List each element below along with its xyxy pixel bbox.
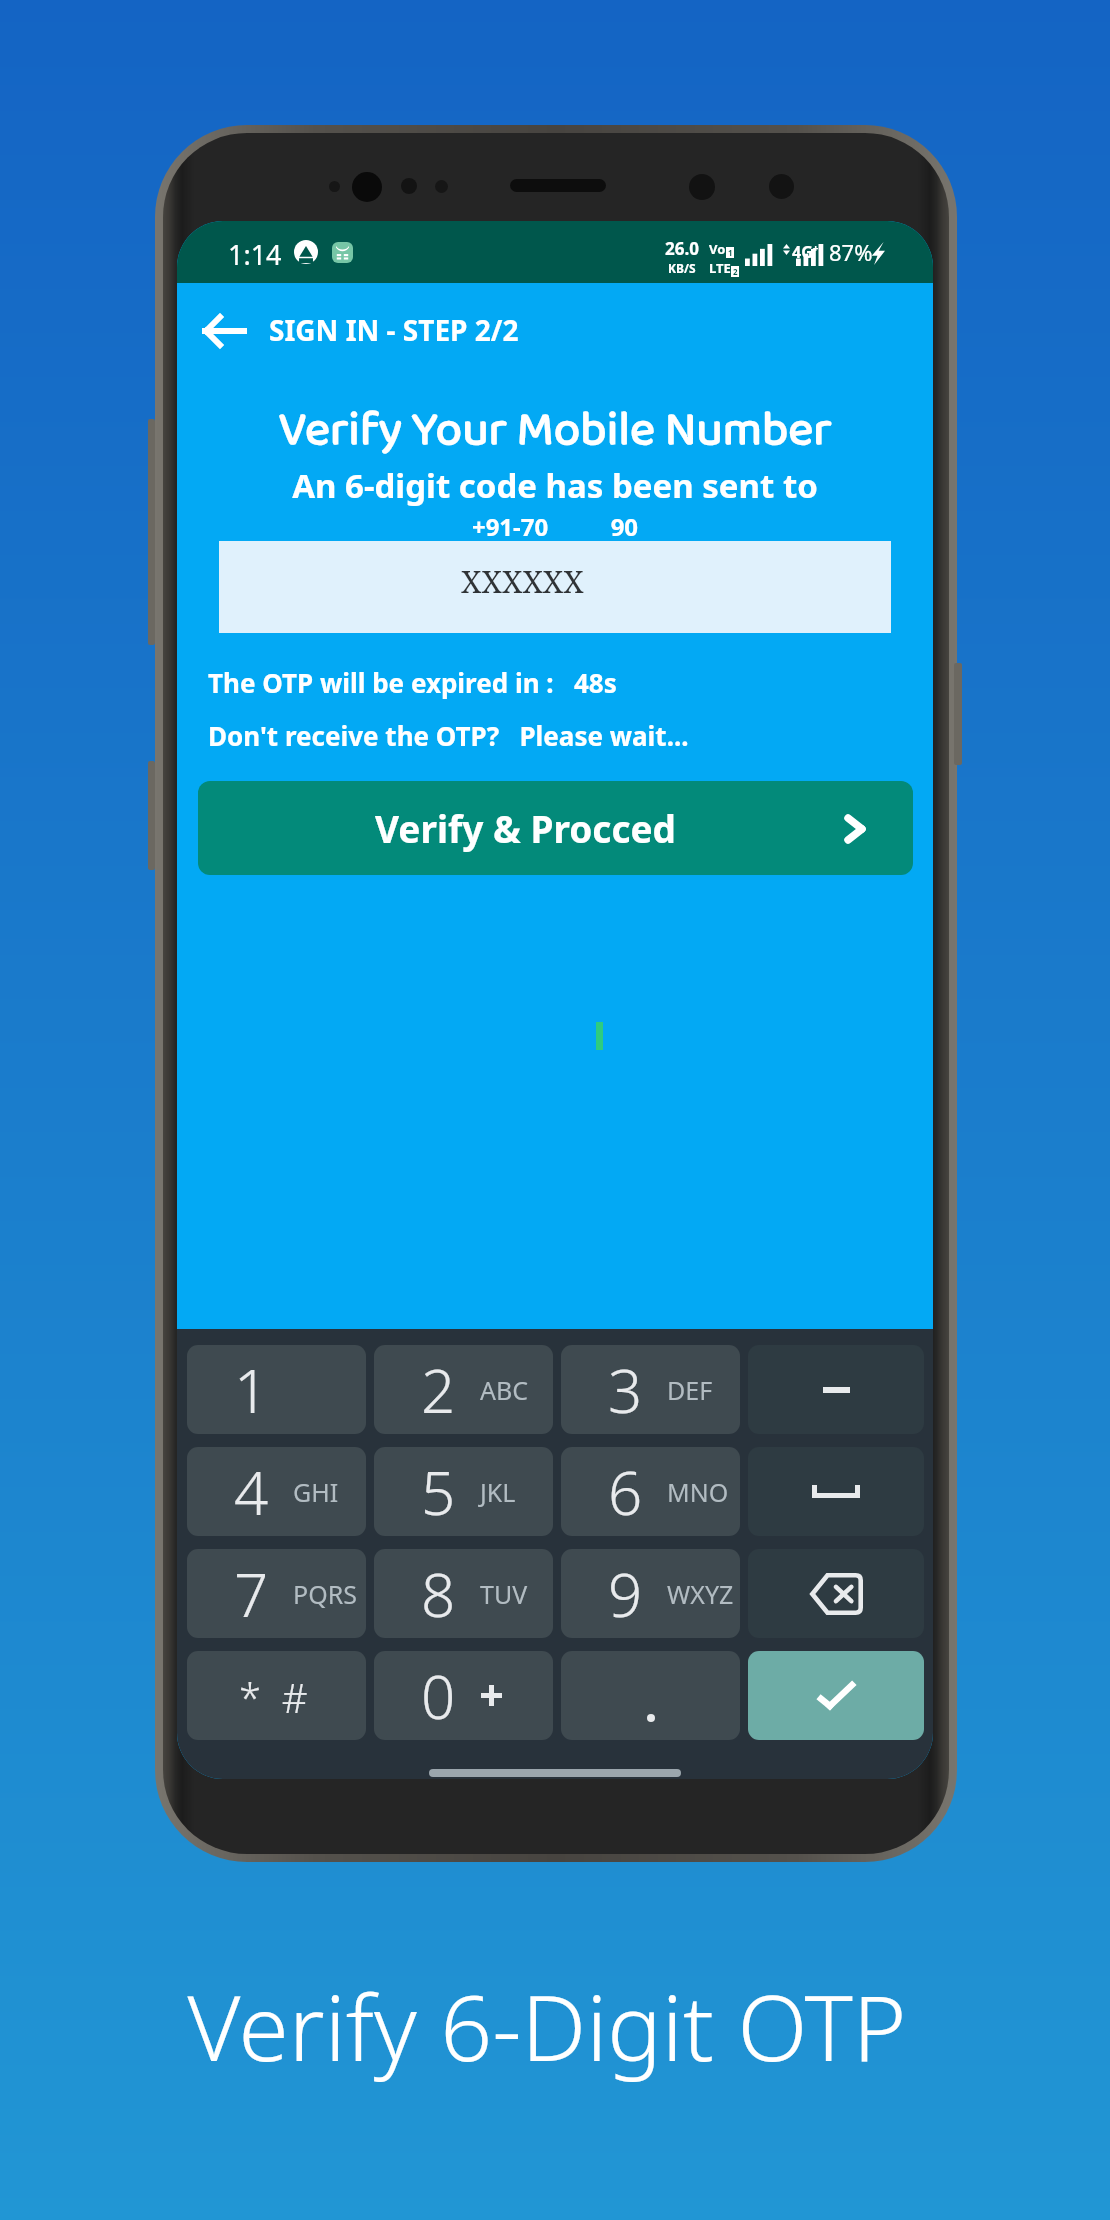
button[interactable]: 4 — [187, 1447, 366, 1536]
staticText: Verify 6-Digit OTP — [0, 1964, 1102, 2088]
button[interactable]: 9 — [561, 1549, 740, 1638]
staticText: Verify & Procced — [375, 803, 676, 853]
button[interactable]: Verify & Procced — [198, 781, 913, 875]
button[interactable]: 5 — [374, 1447, 553, 1536]
staticText: 0 — [421, 1655, 456, 1737]
button[interactable]: Done — [748, 1651, 924, 1740]
staticText: +91-70 90 — [177, 510, 933, 543]
staticText: JKL — [480, 1475, 516, 1509]
staticText: LTE — [709, 259, 731, 277]
staticText: * # — [239, 1670, 308, 1724]
staticText: PQRS — [293, 1577, 357, 1611]
staticText: 8 — [421, 1553, 456, 1635]
staticText: 26.0 — [665, 237, 699, 260]
staticText: 6 — [608, 1451, 643, 1533]
staticText: SIGN IN - STEP 2/2 — [269, 311, 519, 349]
staticText: KB/S — [668, 260, 696, 276]
button[interactable]: 8 — [374, 1549, 553, 1638]
staticText: 2 — [421, 1349, 456, 1431]
staticText: 4G⁺ — [792, 241, 819, 263]
staticText: 4 — [234, 1451, 269, 1533]
button[interactable]: 2 — [374, 1345, 553, 1434]
staticText: 87% — [829, 237, 873, 267]
button[interactable]: 6 — [561, 1447, 740, 1536]
staticText: Don't receive the OTP? Please wait... — [208, 718, 689, 753]
button[interactable]: Space — [748, 1447, 924, 1536]
staticText: The OTP will be expired in : 48s — [208, 665, 617, 700]
button[interactable]: Back — [177, 283, 933, 379]
button[interactable] — [561, 1651, 740, 1740]
staticText: 5 — [421, 1451, 456, 1533]
button[interactable]: * # — [187, 1651, 366, 1740]
button[interactable]: 7 — [187, 1549, 366, 1638]
button[interactable]: Backspace — [748, 1549, 924, 1638]
staticText: 1 — [234, 1349, 269, 1431]
staticText: XXXXXX — [461, 560, 584, 602]
staticText: 7 — [234, 1553, 269, 1635]
staticText: WXYZ — [667, 1577, 734, 1611]
staticText: TUV — [480, 1577, 528, 1611]
staticText: ABC — [480, 1373, 529, 1407]
staticText: 3 — [608, 1349, 643, 1431]
staticText: 1 — [728, 247, 733, 258]
staticText: GHI — [293, 1475, 339, 1509]
staticText: 2 — [733, 266, 738, 277]
staticText: DEF — [667, 1373, 713, 1407]
button[interactable]: 1 — [187, 1345, 366, 1434]
staticText: MNO — [667, 1475, 729, 1509]
staticText: Verify Your Mobile Number — [177, 392, 933, 469]
staticText: 1:14 — [228, 236, 282, 273]
other: Back — [177, 283, 269, 379]
staticText: 9 — [608, 1553, 643, 1635]
staticText: Vo — [709, 240, 726, 258]
button[interactable]: XXXXXX — [219, 541, 891, 633]
staticText: An 6-digit code has been sent to — [177, 463, 933, 508]
button[interactable]: 3 — [561, 1345, 740, 1434]
button[interactable]: 0 — [374, 1651, 553, 1740]
button[interactable]: Dash — [748, 1345, 924, 1434]
